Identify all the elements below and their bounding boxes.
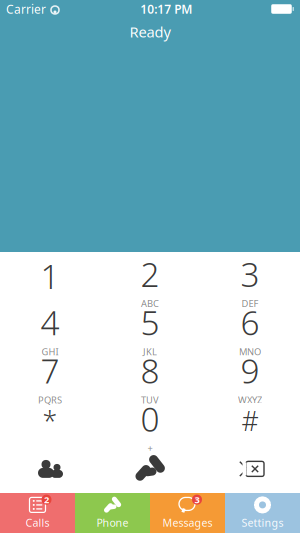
staticText: 7 (40, 348, 59, 393)
button[interactable]: 2 (0, 493, 75, 533)
button[interactable]: Delete (200, 445, 300, 493)
button[interactable]: 9 (200, 348, 300, 397)
staticText: 4 (40, 300, 59, 344)
button[interactable]: Call (100, 445, 200, 493)
staticText: Ready (129, 22, 170, 41)
button[interactable]: 5 (100, 300, 200, 348)
staticText: # (241, 403, 258, 438)
staticText: GHI (41, 345, 58, 358)
button[interactable]: 0 (100, 397, 200, 445)
button[interactable]: 2 (100, 252, 200, 300)
staticText: MNO (239, 345, 261, 358)
staticText: 2 (44, 493, 49, 506)
button[interactable]: 3 (150, 493, 225, 533)
staticText: DEF (241, 297, 258, 310)
staticText: Phone (96, 515, 128, 530)
button[interactable]: 6 (200, 300, 300, 348)
button[interactable]: 3 (200, 252, 300, 300)
staticText: PQRS (38, 394, 62, 406)
staticText: + (147, 442, 152, 454)
staticText: 0 (140, 397, 159, 441)
button[interactable]: Phone (75, 493, 150, 533)
staticText: * (42, 403, 57, 438)
staticText: 3 (240, 252, 259, 296)
staticText: 8 (140, 348, 159, 393)
button[interactable]: 4 (0, 300, 100, 348)
button[interactable]: Settings (225, 493, 300, 533)
staticText: 6 (240, 300, 259, 344)
staticText: 10:17 PM (140, 1, 192, 17)
staticText: 1 (40, 254, 59, 298)
staticText: 9 (240, 348, 259, 393)
staticText: ABC (141, 297, 159, 310)
staticText: 5 (140, 300, 159, 344)
staticText: Settings (241, 515, 283, 530)
staticText: 3 (194, 493, 199, 506)
staticText: 2 (140, 252, 159, 296)
button[interactable]: Contacts (0, 445, 100, 493)
button[interactable]: 1 (0, 252, 100, 300)
staticText: WXYZ (238, 394, 262, 406)
button[interactable]: 7 (0, 348, 100, 397)
button[interactable]: * (0, 397, 100, 445)
button[interactable]: 8 (100, 348, 200, 397)
staticText: TUV (141, 394, 159, 406)
staticText: JKL (143, 345, 157, 358)
staticText: Messages (162, 515, 212, 530)
staticText: Carrier (6, 1, 46, 17)
staticText: Calls (25, 515, 49, 530)
button[interactable]: # (200, 397, 300, 445)
